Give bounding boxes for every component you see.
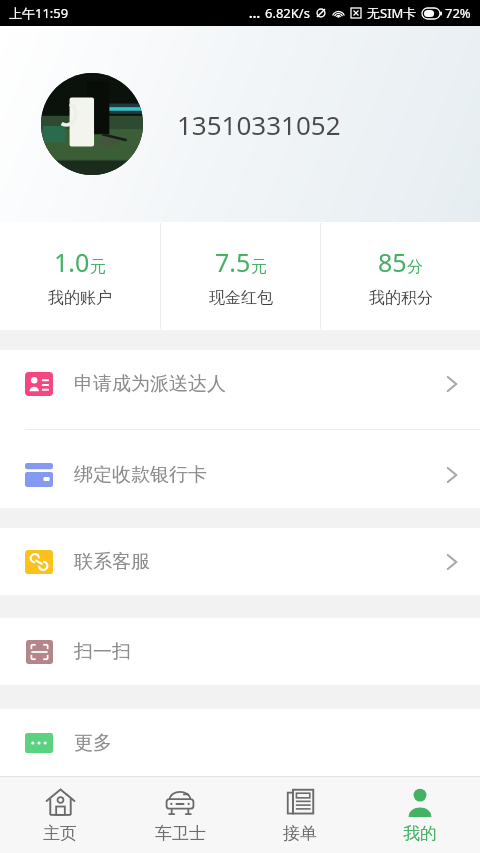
button[interactable]: 我的 [360, 777, 480, 853]
button[interactable]: 更多 [0, 709, 480, 776]
staticText: 上午11:59 [9, 4, 69, 22]
staticText: 主页 [43, 823, 77, 844]
staticText: 元 [251, 257, 267, 277]
staticText: 现金红包 [209, 288, 273, 308]
button[interactable] [41, 73, 143, 175]
button[interactable]: 联系客服 [0, 528, 480, 595]
staticText: … [249, 4, 261, 22]
button[interactable]: 1.0 [0, 222, 160, 330]
staticText: 车卫士 [155, 823, 206, 844]
staticText: 7.5 [215, 245, 251, 279]
button[interactable]: 车卫士 [120, 777, 240, 853]
staticText: 接单 [283, 823, 317, 844]
staticText: 扫一扫 [74, 640, 131, 664]
button[interactable]: 接单 [240, 777, 360, 853]
other: 我的 [405, 787, 435, 817]
staticText: 分 [407, 257, 423, 277]
staticText: 85 [378, 245, 407, 279]
staticText: 更多 [74, 731, 112, 755]
button[interactable]: 85 [321, 222, 480, 330]
staticText: 我的账户 [48, 288, 112, 308]
button[interactable]: 扫一扫 [0, 618, 480, 685]
staticText: 1.0 [54, 245, 90, 279]
staticText: 72% [445, 4, 471, 22]
button[interactable]: 绑定收款银行卡 [0, 441, 480, 508]
staticText: 我的 [403, 823, 437, 844]
staticText: 13510331052 [177, 107, 341, 142]
staticText: 申请成为派送达人 [74, 372, 226, 396]
button[interactable]: 申请成为派送达人 [0, 350, 480, 417]
staticText: 6.82K/s [265, 4, 310, 22]
staticText: 无SIM卡 [367, 4, 417, 22]
staticText: 我的积分 [369, 288, 433, 308]
staticText: 联系客服 [74, 550, 150, 574]
button[interactable]: 主页 [0, 777, 120, 853]
staticText: 元 [90, 257, 106, 277]
staticText: 绑定收款银行卡 [74, 463, 207, 487]
button[interactable]: 7.5 [161, 222, 320, 330]
